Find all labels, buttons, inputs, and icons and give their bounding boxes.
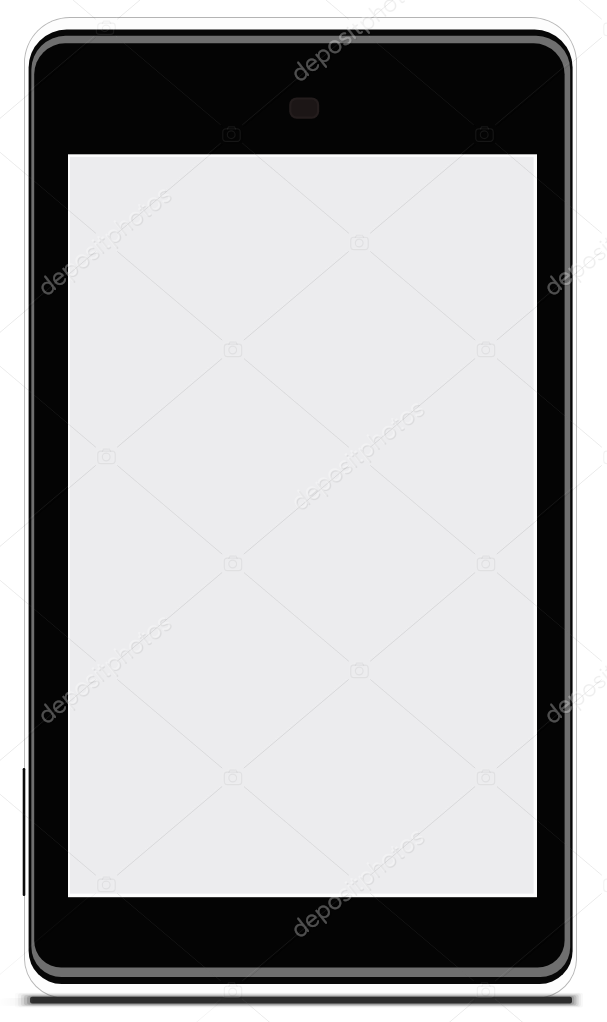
button[interactable]: Tablet device mockup (0, 0, 607, 1022)
